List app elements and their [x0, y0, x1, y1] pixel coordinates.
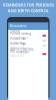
staticText: Daily 9:00: [10, 54, 24, 58]
staticText: Pill reminder: [10, 50, 29, 54]
staticText: 1 day after: [10, 41, 24, 44]
button[interactable]: Period late: [8, 38, 48, 43]
staticText: Fertile days: [10, 42, 25, 45]
staticText: Starts today: [10, 46, 24, 49]
staticText: REMINDERS FOR PERIOD(S): [2, 2, 53, 7]
button[interactable]: Fertile days: [8, 43, 48, 48]
button[interactable]: Pill reminder: [8, 52, 48, 57]
staticText: Period coming: [10, 32, 31, 35]
staticText: PERIOD: [10, 30, 20, 33]
staticText: Period late: [10, 37, 26, 40]
button[interactable]: Period coming: [8, 33, 48, 38]
staticText: BIRTH CONTROL: [10, 48, 33, 52]
staticText: AND BIRTH CONTROL: [7, 8, 48, 13]
staticText: 2 days before: [10, 36, 29, 39]
staticText: Reminders: [10, 24, 26, 28]
